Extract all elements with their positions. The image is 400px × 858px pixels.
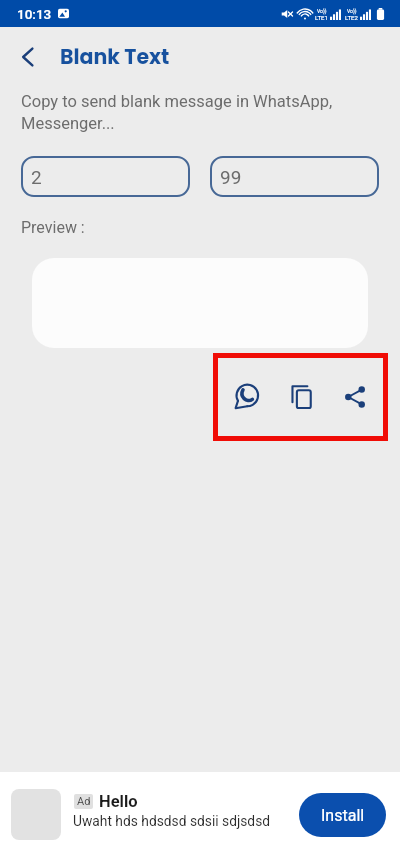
staticText: 2: [31, 166, 42, 188]
staticText: Vo)): [317, 8, 327, 14]
staticText: Copy to send blank message in WhatsApp, …: [21, 92, 366, 133]
staticText: Blank Text: [60, 42, 170, 71]
button[interactable]: Back: [8, 37, 48, 77]
staticText: 99: [220, 166, 242, 188]
staticText: LTE2: [345, 14, 358, 21]
button[interactable]: Copy: [280, 376, 322, 418]
staticText: Preview :: [21, 218, 85, 237]
staticText: Vo)): [347, 8, 357, 14]
button[interactable]: Send on WhatsApp: [225, 376, 267, 418]
button[interactable]: Share: [334, 376, 376, 418]
staticText: Hello: [99, 792, 138, 811]
staticText: Install: [321, 806, 365, 825]
staticText: Ad: [77, 795, 91, 808]
staticText: LTE1: [315, 14, 328, 21]
button[interactable]: 2: [21, 156, 190, 197]
staticText: Uwaht hds hdsdsd sdsii sdjsdsd: [73, 813, 271, 829]
staticText: 10:13: [17, 6, 52, 22]
button[interactable]: Install: [299, 793, 386, 837]
button[interactable]: 99: [210, 156, 379, 197]
